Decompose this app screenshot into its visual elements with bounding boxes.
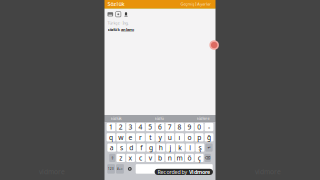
staticText: o [187,133,191,142]
staticText: 1 [109,123,113,131]
button[interactable]: Add word [206,40,215,50]
button[interactable]: p [195,133,204,141]
staticText: ğ [207,133,211,142]
button[interactable]: Handwriting [107,12,113,16]
button[interactable]: n [165,154,174,162]
button[interactable]: v [146,154,155,162]
button[interactable]: y [156,133,164,141]
staticText: w [118,133,123,142]
staticText: ⌫ [205,156,211,160]
button[interactable]: a [107,143,116,152]
button[interactable]: m [175,154,184,162]
button[interactable]: 7 [165,123,174,131]
button[interactable]: 0 [195,123,204,131]
staticText: 5 [148,123,152,131]
staticText: sözlü [154,116,163,121]
button[interactable]: z [116,154,125,162]
button[interactable]: sözlere [196,116,209,121]
button[interactable]: 1 [107,123,115,131]
button[interactable]: ğ [205,133,213,141]
staticText: y [158,133,161,142]
staticText: 0 [197,123,201,131]
button[interactable]: sözlü [154,116,163,121]
button[interactable]: Ayarlar [196,1,212,7]
button[interactable]: ı [175,133,184,141]
staticText: r [139,133,142,142]
staticText: b [158,153,162,162]
staticText: sözlere [196,116,209,121]
staticText: 4 [138,123,142,131]
staticText: ö [187,153,191,162]
staticText: m [177,153,183,162]
button[interactable]: f [137,143,146,152]
button[interactable]: c [136,154,145,162]
button[interactable]: ö [185,154,194,162]
staticText: j [170,143,172,152]
button[interactable]: e [126,133,135,141]
button[interactable]: ç [195,154,204,162]
staticText: sözlük [110,116,121,121]
button[interactable]: j [166,143,175,152]
staticText: - [208,123,210,131]
button[interactable]: t [146,133,155,141]
staticText: c [139,153,142,162]
staticText: anlamı [121,27,134,32]
staticText: Türkçe · İng. [107,20,128,25]
button[interactable]: h [156,143,165,152]
staticText: p [197,133,201,142]
button[interactable]: #+= [116,164,124,174]
button[interactable]: w [116,133,125,141]
button[interactable]: u [165,133,174,141]
button[interactable]: 3 [126,123,135,131]
button[interactable] [136,164,213,174]
button[interactable]: - [205,123,213,131]
button[interactable]: b [156,154,164,162]
button[interactable]: o [185,133,194,141]
staticText: d [129,143,133,152]
staticText: sözlük [107,27,119,32]
button[interactable]: g [147,143,155,152]
staticText: h [159,143,163,152]
button[interactable]: x [126,154,135,162]
button[interactable]: ⌫ [205,154,211,162]
button[interactable]: Switch keyboard [125,164,134,174]
button[interactable]: sözlük [110,116,121,121]
button[interactable]: q [107,133,115,141]
staticText: 123 [108,167,114,171]
staticText: q [109,133,113,142]
button[interactable]: 5 [146,123,155,131]
button[interactable]: 2 [116,123,125,131]
button[interactable]: ↵ [205,143,213,152]
button[interactable]: l [186,143,195,152]
staticText: Sözlük [107,0,124,8]
staticText: 2 [119,123,123,131]
staticText: ⇧ [111,156,114,160]
staticText: f [140,143,142,152]
button[interactable]: 9 [185,123,194,131]
staticText: a [110,143,114,152]
button[interactable]: Sözlük [107,0,124,8]
button[interactable]: 6 [156,123,164,131]
button[interactable]: s [117,143,126,152]
staticText: g [149,143,153,152]
staticText: Geçmiş [180,1,194,7]
staticText: #+= [117,167,123,171]
button[interactable]: Microphone [123,12,128,17]
button[interactable]: ş [196,143,204,152]
button[interactable]: ⇧ [109,154,115,162]
staticText: vidmore [39,167,65,176]
button[interactable]: Camera [116,12,121,17]
staticText: 8 [178,123,182,131]
button[interactable]: 123 [107,164,115,174]
staticText: ş [198,143,201,152]
button[interactable]: Geçmiş [179,1,196,7]
staticText: e [129,133,133,142]
button[interactable]: 8 [175,123,184,131]
staticText: Ayarlar [197,1,211,7]
button[interactable]: d [127,143,136,152]
button[interactable]: k [176,143,185,152]
staticText: v [149,153,152,162]
staticText: n [168,153,172,162]
button[interactable]: 4 [136,123,145,131]
button[interactable]: r [136,133,145,141]
